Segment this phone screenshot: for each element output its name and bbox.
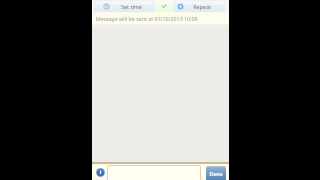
button[interactable]	[107, 165, 201, 180]
button[interactable]: Repeat	[173, 0, 225, 12]
button[interactable]: Done	[206, 166, 226, 180]
staticText: Message will be sent at 07/10/2013 10:08	[95, 15, 198, 22]
button[interactable]: Confirm	[156, 0, 172, 12]
button[interactable]: Contacts	[96, 168, 105, 177]
button[interactable]: Set time	[94, 0, 155, 12]
staticText: Done	[209, 171, 223, 178]
staticText: Set time	[121, 3, 142, 10]
staticText: Repeat	[193, 3, 211, 10]
